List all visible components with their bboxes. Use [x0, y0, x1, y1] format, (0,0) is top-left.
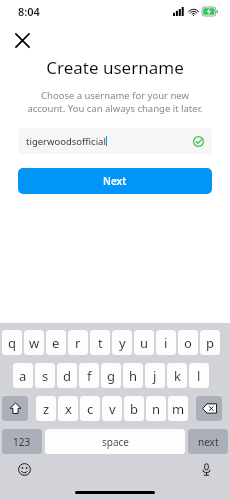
button[interactable]: Voice input	[196, 459, 216, 479]
button[interactable]: Backspace	[196, 396, 222, 421]
button[interactable]: f	[79, 363, 99, 388]
button[interactable]: r	[68, 330, 88, 355]
staticText: p	[206, 334, 214, 352]
button[interactable]: m	[168, 396, 188, 421]
staticText: tigerwoodsofficial	[26, 135, 106, 148]
staticText: c	[87, 400, 94, 418]
button[interactable]: x	[58, 396, 78, 421]
staticText: 8:04	[18, 4, 40, 19]
button[interactable]: h	[123, 363, 143, 388]
staticText: o	[184, 334, 192, 352]
button[interactable]: Shift	[2, 396, 28, 421]
staticText: j	[153, 367, 157, 385]
button[interactable]: next	[188, 429, 228, 454]
staticText: v	[109, 400, 116, 418]
button[interactable]: w	[24, 330, 44, 355]
staticText: Create username	[0, 56, 230, 79]
button[interactable]: t	[90, 330, 110, 355]
button[interactable]: 123	[2, 429, 42, 454]
button[interactable]: space	[45, 429, 185, 454]
staticText: 123	[13, 435, 31, 449]
staticText: w	[29, 334, 40, 352]
staticText: s	[42, 367, 49, 385]
button[interactable]: Next	[18, 168, 212, 194]
button[interactable]: i	[156, 330, 176, 355]
button[interactable]: e	[46, 330, 66, 355]
button[interactable]: q	[2, 330, 22, 355]
button[interactable]: Close	[8, 26, 36, 54]
staticText: a	[19, 367, 27, 385]
staticText: r	[75, 334, 81, 352]
button[interactable]: v	[102, 396, 122, 421]
staticText: q	[8, 334, 16, 352]
staticText: y	[119, 334, 126, 352]
button[interactable]: z	[36, 396, 56, 421]
staticText: z	[43, 400, 50, 418]
button[interactable]: y	[112, 330, 132, 355]
staticText: x	[65, 400, 72, 418]
staticText: f	[87, 367, 92, 385]
button[interactable]: g	[101, 363, 121, 388]
staticText: h	[129, 367, 138, 385]
button[interactable]: u	[134, 330, 154, 355]
button[interactable]: o	[178, 330, 198, 355]
staticText: Choose a username for your new account. …	[22, 89, 208, 115]
button[interactable]: Emoji	[14, 459, 34, 479]
staticText: next	[198, 435, 219, 449]
button[interactable]: j	[145, 363, 165, 388]
staticText: space	[102, 435, 129, 449]
staticText: n	[152, 400, 161, 418]
button[interactable]: n	[146, 396, 166, 421]
staticText: u	[140, 334, 149, 352]
staticText: l	[197, 367, 201, 385]
staticText: e	[52, 334, 60, 352]
button[interactable]: a	[13, 363, 33, 388]
button[interactable]: b	[124, 396, 144, 421]
staticText: b	[130, 400, 138, 418]
staticText: d	[63, 367, 71, 385]
staticText: t	[98, 334, 103, 352]
button[interactable]: d	[57, 363, 77, 388]
staticText: i	[164, 334, 168, 352]
button[interactable]: p	[200, 330, 220, 355]
staticText: g	[107, 367, 115, 385]
staticText: m	[172, 400, 185, 418]
button[interactable]: k	[167, 363, 187, 388]
staticText: Next	[103, 174, 127, 188]
button[interactable]: c	[80, 396, 100, 421]
button[interactable]: tigerwoodsofficial	[18, 128, 212, 154]
button[interactable]: s	[35, 363, 55, 388]
button[interactable]: l	[189, 363, 209, 388]
staticText: k	[174, 367, 181, 385]
